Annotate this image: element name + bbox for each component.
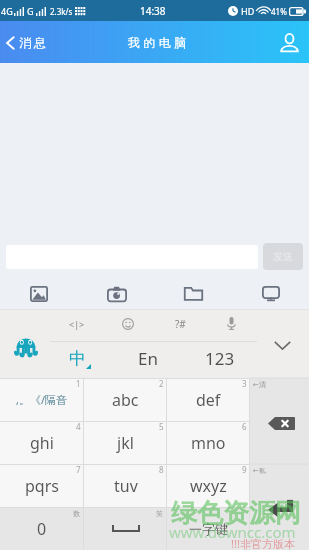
button[interactable]: Voice input <box>218 310 244 337</box>
staticText: www.downcc.com <box>169 522 296 542</box>
staticText: 7 <box>76 464 81 475</box>
staticText: pqrs <box>25 475 59 497</box>
button[interactable]: tuv <box>84 464 167 507</box>
staticText: mno <box>191 432 226 454</box>
staticText: 6 <box>242 421 247 432</box>
button[interactable]: def <box>167 378 250 421</box>
staticText: En <box>138 347 158 370</box>
staticText: ghi <box>30 432 54 454</box>
staticText: 2 <box>159 378 164 389</box>
button[interactable]: Remote screen <box>232 278 309 309</box>
button[interactable]: En <box>128 343 168 373</box>
staticText: 4G <box>1 5 13 17</box>
staticText: HD <box>241 5 255 17</box>
staticText: 9 <box>242 464 247 475</box>
staticText: 4 <box>76 421 81 432</box>
staticText: 8 <box>159 464 164 475</box>
staticText: 笑 <box>156 509 163 518</box>
button[interactable]: abc <box>84 378 167 421</box>
staticText: wxyz <box>190 475 227 497</box>
staticText: tuv <box>114 475 138 497</box>
button[interactable]: 发送 <box>263 243 303 270</box>
button[interactable]: ghi <box>0 421 84 464</box>
button[interactable]: Symbols <box>167 310 193 337</box>
staticText: 数 <box>73 509 80 518</box>
staticText: !!!非官方版本 <box>231 536 295 550</box>
staticText: 0 <box>37 518 47 540</box>
staticText: 14:38 <box>140 4 166 18</box>
button[interactable]: pqrs <box>0 464 84 507</box>
staticText: 我的电脑 <box>126 35 188 50</box>
button[interactable]: mno <box>167 421 250 464</box>
button[interactable]: 消息 <box>0 29 55 56</box>
staticText: jkl <box>117 432 134 454</box>
button[interactable]: Hide keyboard <box>262 330 302 360</box>
button[interactable]: Input method logo <box>14 334 37 356</box>
staticText: 123 <box>205 347 235 370</box>
button[interactable]: 一字键 <box>167 507 250 550</box>
button[interactable]: Camera <box>78 278 155 309</box>
staticText: 2.3k/s <box>50 6 73 17</box>
staticText: <|> <box>69 318 85 330</box>
staticText: 5 <box>159 421 164 432</box>
staticText: 中 <box>69 348 86 369</box>
button[interactable]: Emoji <box>115 310 141 337</box>
staticText: 消息 <box>18 35 47 50</box>
staticText: def <box>196 389 221 411</box>
staticText: 一字键 <box>189 521 228 537</box>
button[interactable]: 123 <box>198 343 242 373</box>
button[interactable]: wxyz <box>167 464 250 507</box>
button[interactable]: 0 <box>0 507 84 550</box>
button[interactable]: 笑 <box>84 507 167 550</box>
staticText: ?# <box>175 317 186 331</box>
staticText: ←清 <box>253 380 266 389</box>
staticText: abc <box>112 389 139 411</box>
button[interactable]: Backspace <box>250 378 309 464</box>
staticText: 41% <box>271 6 287 17</box>
staticText: ←私 <box>253 466 266 475</box>
button[interactable]: jkl <box>84 421 167 464</box>
button[interactable]: Photos <box>0 278 78 309</box>
staticText: 发送 <box>273 250 293 263</box>
staticText: 绿色资源网 <box>171 497 301 530</box>
button[interactable]: Cursor control <box>64 310 90 337</box>
button[interactable]: ,。《/隔音 <box>0 378 84 421</box>
button[interactable]: Contact profile <box>274 27 304 57</box>
staticText: ,。《/隔音 <box>16 392 68 407</box>
button[interactable]: 中 <box>64 343 96 373</box>
staticText: 1 <box>76 378 81 389</box>
staticText: G <box>27 5 34 17</box>
button[interactable]: Files <box>155 278 232 309</box>
button[interactable]: Enter <box>250 464 309 550</box>
staticText: 3 <box>242 378 247 389</box>
